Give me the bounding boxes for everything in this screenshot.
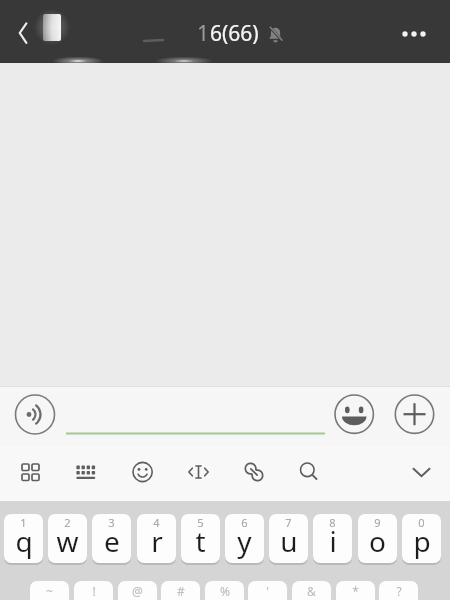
button[interactable] (14, 394, 56, 436)
button[interactable] (0, 0, 46, 63)
button[interactable]: ! (74, 581, 113, 600)
button[interactable]: & (292, 581, 331, 600)
button[interactable] (396, 0, 450, 63)
staticText: t (195, 522, 206, 560)
button[interactable] (334, 394, 374, 434)
button[interactable]: 2 (48, 514, 87, 563)
button[interactable]: 5 (181, 514, 220, 563)
button[interactable]: * (336, 581, 375, 600)
staticText: 1 (197, 19, 210, 48)
button[interactable]: 9 (358, 514, 397, 563)
staticText: 6(66) (210, 19, 259, 48)
staticText: 9 (374, 515, 381, 530)
staticText: 5 (197, 515, 204, 530)
button[interactable]: 8 (313, 514, 352, 563)
button[interactable] (286, 449, 334, 497)
staticText: p (413, 522, 431, 560)
staticText: ~ (46, 583, 53, 599)
staticText: * (352, 583, 359, 599)
button[interactable]: 6 (225, 514, 264, 563)
button[interactable]: 4 (137, 514, 176, 563)
staticText: 0 (418, 515, 425, 530)
staticText: e (104, 522, 120, 560)
button[interactable] (118, 449, 166, 497)
button[interactable]: ' (248, 581, 287, 600)
button[interactable]: % (205, 581, 244, 600)
staticText: 6 (241, 515, 248, 530)
button[interactable]: 1 (4, 514, 43, 563)
button[interactable] (174, 449, 222, 497)
staticText: y (237, 522, 252, 560)
staticText: o (369, 522, 386, 560)
button[interactable]: 3 (92, 514, 131, 563)
button[interactable] (6, 449, 54, 497)
staticText: 7 (285, 515, 292, 530)
staticText: 1 (20, 515, 27, 530)
staticText: & (307, 583, 316, 599)
staticText: @ (132, 583, 143, 599)
staticText: ! (92, 583, 96, 599)
button[interactable] (62, 449, 110, 497)
staticText: 4 (153, 515, 160, 530)
button[interactable] (230, 449, 278, 497)
button[interactable]: @ (118, 581, 157, 600)
staticText: 2 (64, 515, 71, 530)
staticText: 3 (108, 515, 115, 530)
staticText: w (56, 522, 79, 560)
staticText: 8 (329, 515, 336, 530)
staticText: ? (396, 583, 402, 599)
button[interactable]: ? (379, 581, 418, 600)
staticText: i (329, 522, 337, 560)
button[interactable] (394, 394, 434, 434)
staticText: u (280, 522, 298, 560)
staticText: # (177, 583, 185, 599)
staticText: ' (266, 583, 269, 599)
staticText: % (220, 583, 230, 599)
staticText: q (15, 522, 33, 560)
button[interactable]: # (161, 581, 200, 600)
staticText: r (151, 522, 163, 560)
button[interactable]: 0 (402, 514, 441, 563)
button[interactable] (62, 392, 330, 440)
button[interactable]: 7 (269, 514, 308, 563)
button[interactable] (396, 449, 444, 497)
button[interactable]: ~ (30, 581, 69, 600)
